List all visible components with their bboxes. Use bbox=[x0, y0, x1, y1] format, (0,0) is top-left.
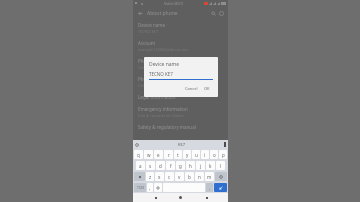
button[interactable]: x bbox=[155, 172, 164, 181]
staticText: b bbox=[188, 174, 191, 180]
button[interactable]: w bbox=[144, 150, 153, 159]
button[interactable]: e bbox=[154, 150, 163, 159]
button[interactable]: s bbox=[146, 161, 155, 170]
staticText: OK bbox=[204, 86, 210, 91]
button[interactable]: c bbox=[165, 172, 174, 181]
button[interactable]: n bbox=[195, 172, 204, 181]
button[interactable]: u bbox=[192, 150, 200, 159]
staticText: o bbox=[213, 152, 216, 158]
button[interactable]: Home bbox=[177, 194, 184, 201]
button[interactable]: Account bbox=[138, 37, 223, 55]
staticText: TECNO KE7 bbox=[138, 29, 159, 34]
button[interactable]: t bbox=[174, 150, 182, 159]
button[interactable]: h bbox=[186, 161, 195, 170]
staticText: r bbox=[168, 152, 170, 158]
staticText: , bbox=[149, 185, 151, 191]
button[interactable]: j bbox=[196, 161, 205, 170]
staticText: KE7 bbox=[178, 142, 185, 147]
staticText: u bbox=[195, 152, 198, 158]
staticText: Emergency information bbox=[138, 106, 188, 112]
button[interactable]: ?123 bbox=[134, 183, 146, 192]
button[interactable]: v bbox=[175, 172, 184, 181]
button[interactable]: Search bbox=[209, 9, 217, 17]
button[interactable]: m bbox=[205, 172, 214, 181]
button[interactable]: z bbox=[146, 172, 154, 181]
button[interactable]: r bbox=[164, 150, 173, 159]
staticText: m bbox=[207, 174, 212, 180]
staticText: Safety & regulatory manual bbox=[138, 124, 196, 130]
button[interactable]: k bbox=[206, 161, 215, 170]
staticText: c bbox=[168, 174, 171, 180]
staticText: ?123 bbox=[137, 186, 144, 190]
staticText: Account bbox=[138, 40, 156, 46]
button[interactable]: Help bbox=[217, 9, 225, 17]
staticText: j bbox=[200, 163, 202, 169]
staticText: Legal information bbox=[138, 94, 176, 100]
button[interactable]: p bbox=[219, 150, 227, 159]
staticText: w bbox=[147, 152, 151, 158]
button[interactable]: OK bbox=[201, 84, 213, 93]
staticText: Mobile MODI bbox=[164, 2, 183, 6]
staticText: e bbox=[157, 152, 160, 158]
staticText: k bbox=[209, 163, 212, 169]
button[interactable]: Back bbox=[136, 9, 144, 17]
staticText: Phone number (sim slot 1) bbox=[138, 58, 194, 64]
button[interactable]: Recents bbox=[203, 194, 210, 201]
staticText: Unknown bbox=[138, 83, 156, 88]
staticText: . bbox=[209, 185, 211, 191]
button[interactable]: d bbox=[156, 161, 165, 170]
staticText: x bbox=[158, 174, 161, 180]
button[interactable]: g bbox=[176, 161, 185, 170]
staticText: g bbox=[179, 163, 182, 169]
staticText: Cancel bbox=[185, 86, 198, 91]
button[interactable]: a bbox=[136, 161, 145, 170]
staticText: t bbox=[177, 152, 179, 158]
staticText: Device name bbox=[149, 61, 180, 68]
staticText: y bbox=[186, 152, 189, 158]
button[interactable]: y bbox=[183, 150, 191, 159]
staticText: n bbox=[198, 174, 201, 180]
button[interactable]: Emoji bbox=[135, 143, 139, 147]
staticText: z bbox=[149, 174, 152, 180]
staticText: a bbox=[139, 163, 142, 169]
staticText: Unknown bbox=[138, 65, 156, 70]
staticText: Phone number (sim slot 2) bbox=[138, 76, 194, 82]
button[interactable]: q bbox=[134, 150, 143, 159]
staticText: example123456@demo.com bbox=[138, 47, 189, 52]
staticText: f bbox=[170, 163, 172, 169]
button[interactable]: i bbox=[201, 150, 209, 159]
button[interactable]: b bbox=[185, 172, 194, 181]
button[interactable]: Phone number (sim slot 1) bbox=[138, 55, 223, 73]
staticText: d bbox=[159, 163, 162, 169]
staticText: v bbox=[178, 174, 181, 180]
staticText: About phone bbox=[147, 10, 178, 17]
button[interactable]: Back bbox=[152, 194, 159, 201]
button[interactable]: Legal information bbox=[138, 91, 223, 103]
button[interactable]: Device name bbox=[138, 19, 223, 37]
staticText: s bbox=[149, 163, 152, 169]
staticText: i bbox=[204, 152, 206, 158]
staticText: p bbox=[222, 152, 225, 158]
button[interactable]: Emergency information bbox=[138, 103, 223, 121]
button[interactable]: . bbox=[206, 183, 213, 192]
staticText: q bbox=[137, 152, 140, 158]
staticText: TECNO KE7 bbox=[149, 71, 173, 77]
button[interactable]: , bbox=[147, 183, 153, 192]
staticText: Info & contacts for Owner bbox=[138, 113, 185, 118]
button[interactable]: l bbox=[216, 161, 225, 170]
staticText: l bbox=[220, 163, 222, 169]
button[interactable]: Safety & regulatory manual bbox=[138, 121, 223, 133]
button[interactable]: Voice input bbox=[154, 183, 162, 192]
button[interactable]: f bbox=[166, 161, 175, 170]
staticText: h bbox=[189, 163, 192, 169]
button[interactable]: o bbox=[210, 150, 218, 159]
button[interactable]: Enter bbox=[214, 183, 227, 192]
button[interactable]: Shift bbox=[134, 172, 145, 181]
staticText: Device name bbox=[138, 22, 166, 28]
button[interactable]: Backspace bbox=[215, 172, 227, 181]
button[interactable]: Phone number (sim slot 2) bbox=[138, 73, 223, 91]
button[interactable]: Cancel bbox=[182, 84, 201, 93]
